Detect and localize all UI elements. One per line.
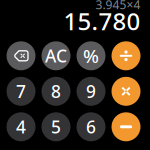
button[interactable]: Multiply <box>111 77 140 106</box>
staticText: 4 <box>16 115 26 138</box>
staticText: 3.945×4 <box>95 0 140 12</box>
staticText: 5 <box>51 115 61 138</box>
staticText: AC <box>45 44 67 67</box>
button[interactable]: 8 <box>41 77 70 106</box>
button[interactable]: AC <box>41 41 70 70</box>
button[interactable]: % <box>76 41 105 70</box>
staticText: 9 <box>86 80 96 103</box>
button[interactable]: 4 <box>6 112 35 141</box>
staticText: 15.780 <box>63 5 140 37</box>
button[interactable]: 9 <box>76 77 105 106</box>
staticText: 8 <box>51 80 61 103</box>
button[interactable]: 7 <box>6 77 35 106</box>
button[interactable]: Subtract <box>111 112 140 141</box>
button[interactable]: Divide <box>111 41 140 70</box>
staticText: 6 <box>86 115 96 138</box>
button[interactable]: 6 <box>76 112 105 141</box>
button[interactable]: Delete <box>6 41 35 70</box>
button[interactable]: 5 <box>41 112 70 141</box>
staticText: 7 <box>16 80 26 103</box>
staticText: % <box>83 43 99 68</box>
